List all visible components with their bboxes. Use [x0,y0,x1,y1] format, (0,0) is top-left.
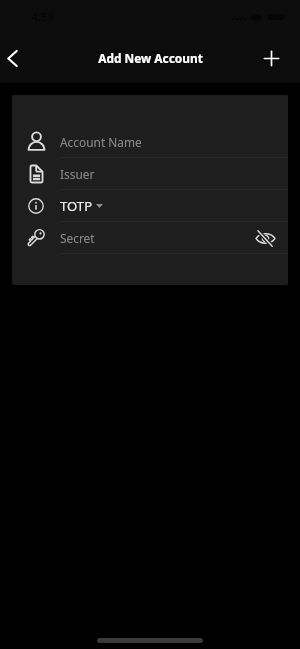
staticText: Add New Account [98,50,203,66]
button[interactable]: Account Name [12,126,288,158]
button[interactable]: Back [2,48,22,68]
button[interactable]: Secret [12,222,288,254]
staticText: Account Name [60,134,142,150]
button[interactable]: Add [258,45,284,71]
staticText: TOTP [60,197,93,215]
button[interactable]: Toggle secret visibility [253,226,277,250]
button[interactable]: TOTP [12,190,288,222]
staticText: Secret [60,230,95,246]
button[interactable]: Issuer [12,158,288,190]
staticText: Issuer [60,166,95,182]
